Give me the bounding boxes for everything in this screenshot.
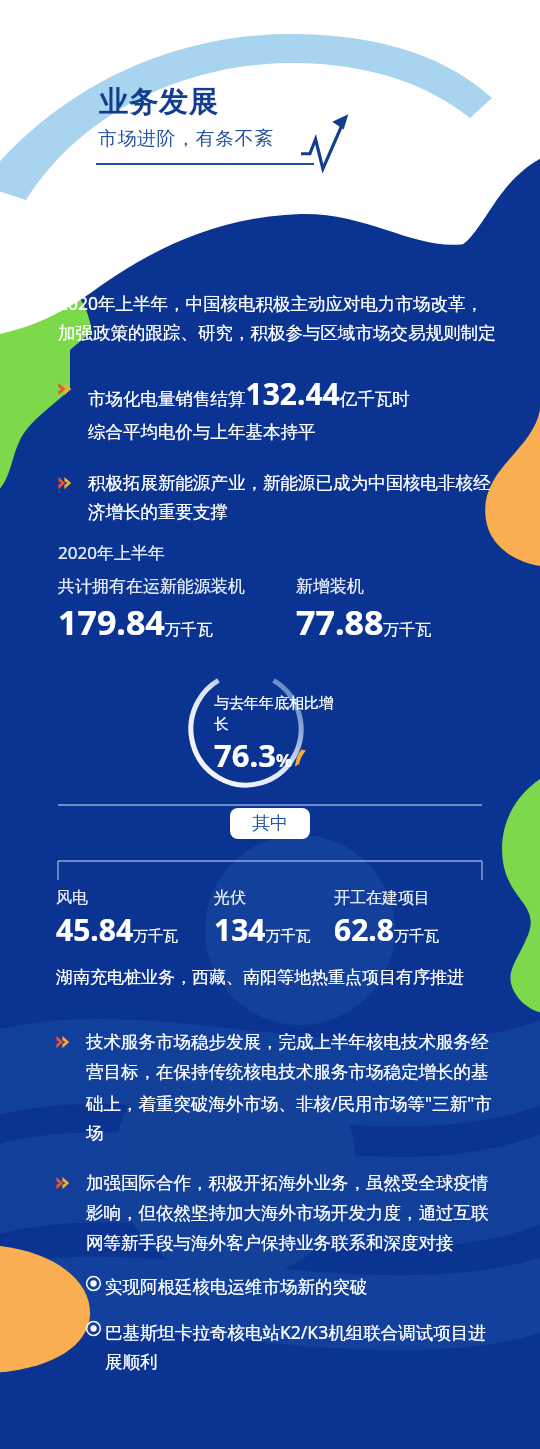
other: 要点 [58, 379, 78, 401]
staticText: 市场进阶，有条不紊 [98, 127, 274, 151]
button[interactable]: 风电 [56, 888, 214, 950]
other: 要点 [56, 1173, 76, 1195]
button[interactable]: 要点 [58, 373, 498, 445]
staticText: 179.84万千瓦 [58, 599, 213, 645]
button[interactable]: 子项 [86, 1271, 500, 1300]
other: 要点 [56, 1032, 76, 1054]
staticText: 新增装机 [296, 576, 364, 597]
staticText: 湖南充电桩业务，西藏、南阳等地热重点项目有序推进 [56, 962, 464, 990]
other: 要点 [58, 473, 78, 495]
button[interactable]: 要点 [56, 1167, 500, 1375]
staticText: 开工在建项目 [334, 888, 430, 908]
button[interactable]: 新增装机 [296, 576, 486, 645]
staticText: 实现阿根廷核电运维市场新的突破 [105, 1271, 368, 1300]
staticText: 77.88万千瓦 [296, 599, 432, 645]
staticText: 其中 [252, 812, 288, 835]
staticText: 积极拓展新能源产业，新能源已成为中国核电非核经济增长的重要支撑 [88, 467, 498, 525]
staticText: 风电 [56, 888, 88, 908]
other: 子项 [86, 1321, 101, 1336]
staticText: 共计拥有在运新能源装机 [58, 576, 245, 597]
staticText: 综合平均电价与上年基本持平 [88, 417, 316, 445]
staticText: 62.8万千瓦 [334, 909, 439, 950]
button[interactable]: 要点 [58, 467, 498, 525]
staticText: 与去年年底相比增长 [214, 694, 334, 734]
button[interactable]: 开工在建项目 [334, 888, 484, 950]
staticText: 76.3% [214, 734, 293, 776]
staticText: 加强国际合作，积极开拓海外业务，虽然受全球疫情影响，但依然坚持加大海外市场开发力… [86, 1167, 500, 1257]
staticText: 光伏 [214, 888, 246, 908]
button[interactable]: 共计拥有在运新能源装机 [58, 576, 296, 645]
button[interactable]: 要点 [56, 1026, 500, 1147]
staticText: 业务发展 [98, 84, 218, 121]
staticText: 134万千瓦 [214, 909, 311, 950]
staticText: 2020年上半年，中国核电积极主动应对电力市场改革，加强政策的跟踪、研究，积极参… [58, 286, 498, 347]
staticText: 技术服务市场稳步发展，完成上半年核电技术服务经营目标，在保持传统核电技术服务市场… [86, 1026, 500, 1147]
other: 子项 [86, 1276, 101, 1291]
button[interactable]: 子项 [86, 1316, 500, 1375]
button[interactable]: 其中 [230, 808, 310, 839]
button[interactable]: 光伏 [214, 888, 334, 950]
staticText: 巴基斯坦卡拉奇核电站K2/K3机组联合调试项目进展顺利 [105, 1316, 500, 1375]
staticText: 2020年上半年 [58, 539, 165, 566]
staticText: 45.84万千瓦 [56, 909, 179, 950]
staticText: 市场化电量销售结算132.44亿千瓦时 [88, 373, 410, 414]
